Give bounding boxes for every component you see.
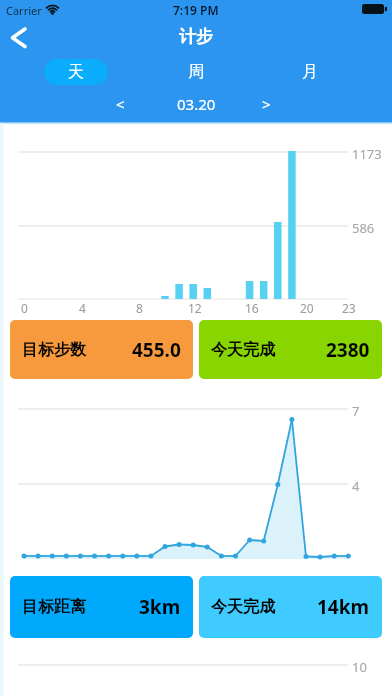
staticText: 8 — [136, 300, 143, 316]
staticText: 16 — [245, 300, 259, 316]
staticText: 14km — [317, 594, 370, 620]
staticText: 0 — [21, 300, 28, 316]
staticText: 目标距离 — [22, 597, 86, 617]
button[interactable]: < — [104, 88, 136, 120]
staticText: Carrier — [6, 3, 42, 18]
staticText: 天 — [68, 62, 84, 82]
staticText: 586 — [352, 219, 375, 237]
button[interactable]: 目标距离 — [10, 576, 193, 638]
staticText: 4 — [352, 477, 360, 495]
staticText: 周 — [188, 62, 204, 82]
button[interactable]: 今天完成 — [199, 320, 382, 379]
staticText: 7:19 PM — [173, 2, 219, 18]
staticText: 1173 — [352, 145, 382, 163]
staticText: < — [116, 94, 125, 114]
staticText: 今天完成 — [211, 340, 275, 360]
button[interactable]: 月 — [288, 55, 332, 88]
staticText: 今天完成 — [211, 597, 275, 617]
staticText: 7 — [352, 402, 360, 420]
staticText: 455.0 — [132, 337, 181, 363]
button[interactable]: 周 — [174, 55, 218, 88]
button[interactable]: > — [250, 88, 282, 120]
staticText: 03.20 — [177, 94, 216, 114]
staticText: 2380 — [326, 337, 370, 363]
button[interactable]: 目标步数 — [10, 320, 193, 379]
button[interactable]: 天 — [44, 59, 108, 85]
staticText: 目标步数 — [22, 340, 86, 360]
staticText: 月 — [302, 62, 318, 82]
staticText: 12 — [188, 300, 202, 316]
staticText: 4 — [79, 300, 86, 316]
staticText: 3km — [139, 594, 181, 620]
staticText: 10 — [352, 658, 367, 676]
staticText: 20 — [300, 300, 314, 316]
staticText: 计步 — [179, 26, 213, 47]
staticText: > — [262, 94, 271, 114]
button[interactable] — [4, 24, 34, 52]
staticText: 23 — [342, 300, 356, 316]
button[interactable]: 今天完成 — [199, 576, 382, 638]
